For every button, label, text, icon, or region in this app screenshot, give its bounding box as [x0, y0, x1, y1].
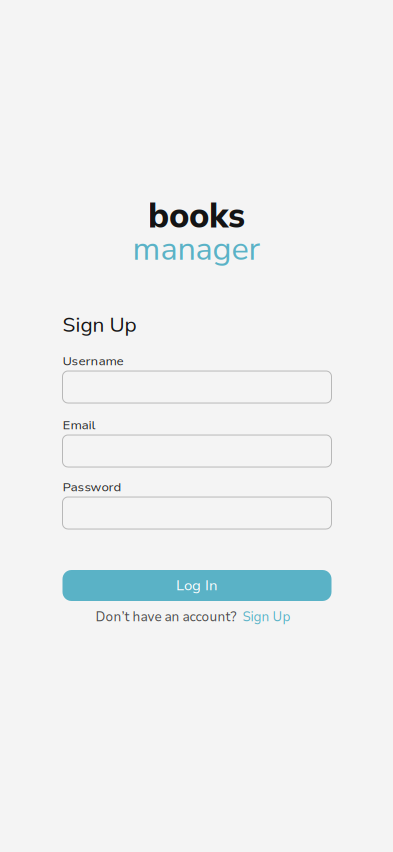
staticText: Sign Up — [242, 608, 290, 626]
staticText: Username — [62, 352, 123, 370]
button[interactable]: Sign Up — [242, 608, 290, 626]
staticText: manager — [132, 227, 260, 271]
button[interactable]: Log In — [62, 570, 331, 601]
button[interactable]: Username — [62, 371, 331, 403]
button[interactable]: Email — [62, 435, 331, 467]
staticText: books — [148, 192, 245, 240]
staticText: Log In — [176, 575, 218, 595]
button[interactable]: Password — [62, 497, 331, 529]
staticText: Don’t have an account? — [95, 608, 236, 626]
staticText: Email — [62, 416, 95, 434]
staticText: Sign Up — [62, 311, 136, 339]
staticText: Password — [62, 478, 121, 496]
